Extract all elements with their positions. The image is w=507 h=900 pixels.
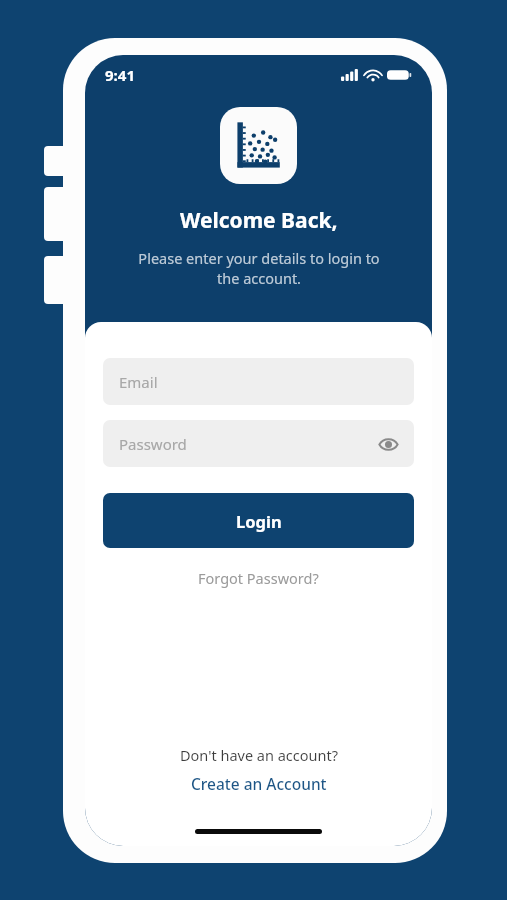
button[interactable]: Login (103, 493, 414, 548)
staticText: Login (236, 510, 282, 532)
staticText: Create an Account (191, 773, 327, 794)
staticText: Please enter your details to login to th… (138, 248, 380, 289)
button[interactable]: Show password (370, 426, 406, 462)
staticText: Email (119, 372, 158, 392)
staticText: Password (119, 434, 187, 454)
button[interactable]: Create an Account (179, 770, 339, 797)
staticText: 9:41 (105, 65, 135, 85)
staticText: Forgot Password? (198, 568, 319, 588)
button[interactable]: Password (103, 420, 414, 467)
button[interactable]: Email (103, 358, 414, 405)
staticText: Don't have an account? (180, 745, 338, 765)
staticText: Welcome Back, (180, 206, 338, 235)
button[interactable]: Forgot Password? (186, 562, 331, 594)
